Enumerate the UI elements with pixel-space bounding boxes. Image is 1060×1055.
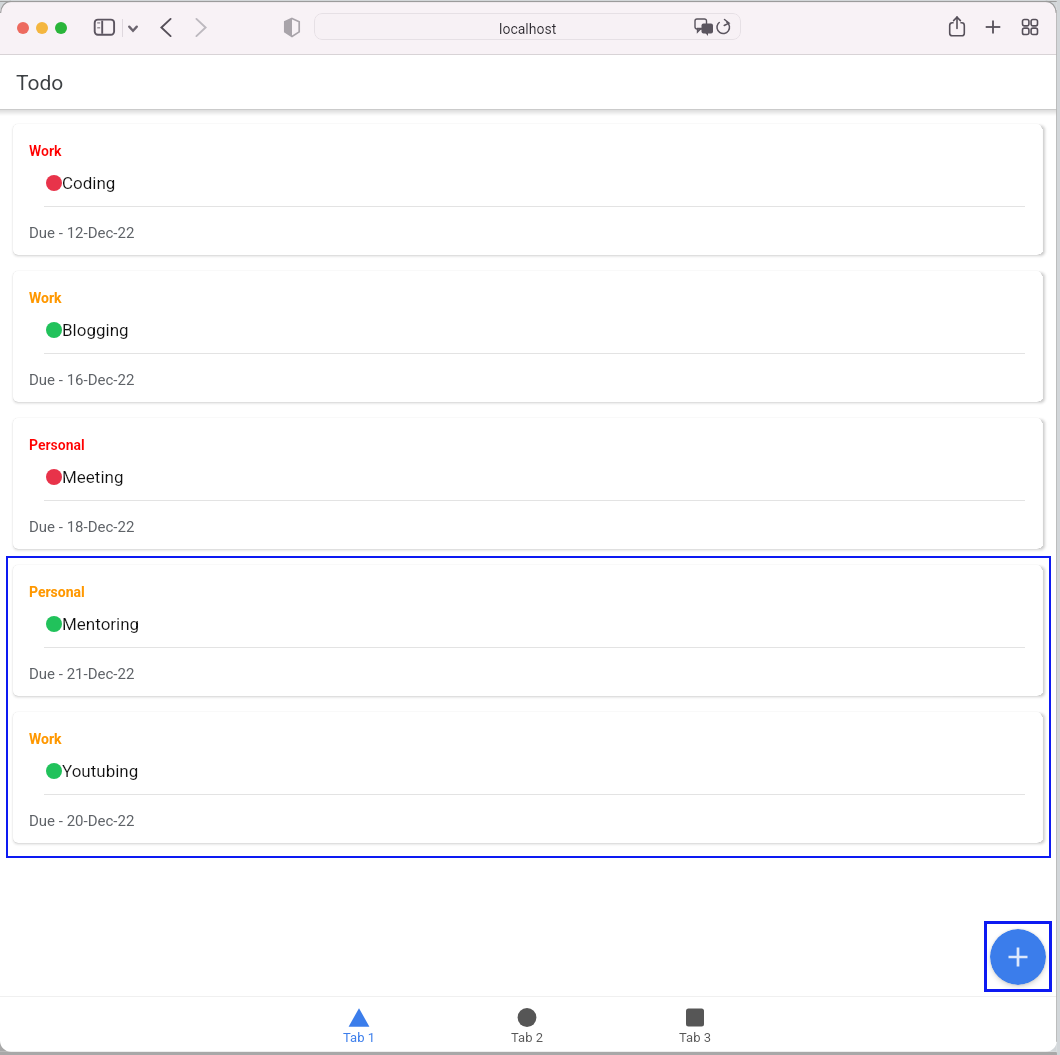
button[interactable]: Sidebar options xyxy=(121,16,145,41)
staticText: Due - 20-Dec-22 xyxy=(29,812,135,830)
staticText: Coding xyxy=(62,173,116,193)
button[interactable]: Personal xyxy=(13,418,1042,549)
button[interactable]: Back xyxy=(152,13,180,42)
button[interactable]: Share xyxy=(943,13,971,41)
button[interactable]: localhost xyxy=(314,13,741,40)
button[interactable]: Work xyxy=(13,712,1042,843)
staticText: Personal xyxy=(29,437,85,453)
staticText: Tab 3 xyxy=(679,1030,711,1045)
button[interactable]: Tab 2 xyxy=(443,996,611,1055)
staticText: Due - 21-Dec-22 xyxy=(29,665,135,683)
staticText: Due - 12-Dec-22 xyxy=(29,224,135,242)
staticText: Meeting xyxy=(62,467,124,487)
button[interactable]: Privacy report xyxy=(280,15,304,40)
staticText: Todo xyxy=(16,71,64,96)
button[interactable]: Show tab overview xyxy=(1016,13,1044,41)
button[interactable]: Tab 1 xyxy=(275,996,443,1055)
button[interactable]: Close window xyxy=(17,22,29,34)
button[interactable]: Work xyxy=(13,124,1042,255)
staticText: Due - 18-Dec-22 xyxy=(29,518,135,536)
staticText: Personal xyxy=(29,584,85,600)
staticText: Blogging xyxy=(62,320,129,340)
button[interactable]: Forward xyxy=(187,13,215,42)
button[interactable]: Minimize window xyxy=(36,22,48,34)
staticText: Due - 16-Dec-22 xyxy=(29,371,135,389)
button[interactable]: Sidebar xyxy=(90,15,120,40)
button[interactable]: Add todo xyxy=(984,921,1052,992)
staticText: Work xyxy=(29,290,62,306)
staticText: Mentoring xyxy=(62,614,140,634)
button[interactable]: Personal xyxy=(13,565,1042,696)
button[interactable]: New tab xyxy=(979,13,1007,41)
staticText: Tab 1 xyxy=(343,1030,375,1045)
staticText: Work xyxy=(29,731,62,747)
staticText: Youtubing xyxy=(62,761,139,781)
staticText: Tab 2 xyxy=(511,1030,543,1045)
staticText: Work xyxy=(29,143,62,159)
staticText: localhost xyxy=(499,21,557,37)
button[interactable]: Tab 3 xyxy=(611,996,779,1055)
button[interactable]: Work xyxy=(13,271,1042,402)
button[interactable]: Full screen xyxy=(55,22,67,34)
